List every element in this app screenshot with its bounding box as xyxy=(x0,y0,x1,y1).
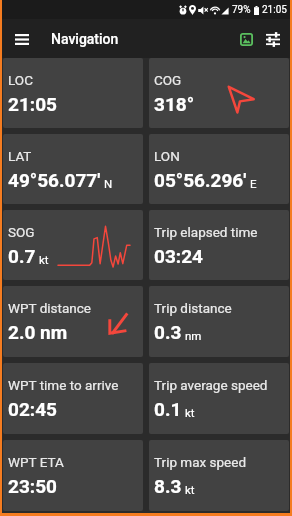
staticText: 8.3 xyxy=(154,475,182,497)
staticText: COG xyxy=(154,72,182,88)
staticText: nm xyxy=(185,329,202,342)
button[interactable]: Trip distance xyxy=(149,286,289,357)
staticText: 0.7 xyxy=(8,245,36,267)
button[interactable]: Trip average speed xyxy=(149,363,289,434)
button[interactable]: LAT xyxy=(3,134,143,204)
staticText: kt xyxy=(185,483,195,496)
staticText: 21:05 xyxy=(8,93,57,115)
button[interactable]: LON xyxy=(149,134,289,204)
staticText: 79% xyxy=(232,4,251,16)
staticText: 49°56.077' xyxy=(8,169,101,191)
staticText: Trip distance xyxy=(154,300,232,316)
staticText: LAT xyxy=(8,148,32,164)
staticText: Trip average speed xyxy=(154,377,268,393)
staticText: 0.3 xyxy=(154,321,182,343)
button[interactable]: WPT time to arrive xyxy=(3,363,143,434)
staticText: 21:05 xyxy=(262,4,287,16)
staticText: SOG xyxy=(8,224,35,240)
staticText: 05°56.296' xyxy=(154,169,247,191)
button[interactable]: WPT distance xyxy=(3,286,143,357)
staticText: kt xyxy=(185,406,195,419)
staticText: WPT time to arrive xyxy=(8,377,119,393)
staticText: LON xyxy=(154,148,180,164)
staticText: Navigation xyxy=(51,31,119,47)
button[interactable]: Open navigation drawer xyxy=(2,20,42,58)
button[interactable]: LOC xyxy=(3,58,143,128)
staticText: Trip max speed xyxy=(154,454,247,470)
staticText: N xyxy=(104,177,113,190)
button[interactable]: Settings xyxy=(257,20,289,58)
staticText: 02:45 xyxy=(8,398,57,420)
staticText: Trip elapsed time xyxy=(154,224,258,240)
button[interactable]: Show map xyxy=(235,20,257,58)
staticText: 23:50 xyxy=(8,475,57,497)
staticText: 03:24 xyxy=(154,245,203,267)
button[interactable]: Trip elapsed time xyxy=(149,210,289,280)
staticText: LOC xyxy=(8,72,33,88)
staticText: 0.1 xyxy=(154,398,182,420)
button[interactable]: Trip max speed xyxy=(149,440,289,511)
button[interactable]: WPT ETA xyxy=(3,440,143,511)
staticText: WPT ETA xyxy=(8,454,64,470)
staticText: WPT distance xyxy=(8,300,91,316)
staticText: 2.0 nm xyxy=(8,321,68,343)
button[interactable]: SOG xyxy=(3,210,143,280)
staticText: E xyxy=(250,177,257,190)
staticText: 318° xyxy=(154,93,195,115)
staticText: kt xyxy=(39,253,49,266)
button[interactable]: COG xyxy=(149,58,289,128)
